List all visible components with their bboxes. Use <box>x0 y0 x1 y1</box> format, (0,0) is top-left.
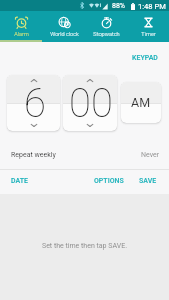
button[interactable]: KEYPAD <box>126 50 166 66</box>
button[interactable]: 00 <box>63 75 117 131</box>
staticText: AM <box>131 95 151 110</box>
staticText: 00 <box>69 80 113 127</box>
staticText: OPTIONS <box>94 177 124 185</box>
staticText: 6 <box>24 80 46 127</box>
staticText: Timer <box>141 31 156 38</box>
staticText: Stopwatch <box>93 31 120 38</box>
button[interactable]: Timer <box>127 12 169 41</box>
staticText: 88% <box>112 2 125 10</box>
button[interactable]: SAVE <box>134 172 169 190</box>
button[interactable]: AM <box>121 82 161 123</box>
staticText: Repeat weekly <box>11 151 56 159</box>
staticText: SAVE <box>139 177 157 185</box>
staticText: World clock <box>50 31 79 38</box>
staticText: Alarm <box>14 31 29 38</box>
button[interactable]: Stopwatch <box>85 12 127 41</box>
staticText: 1:48 PM <box>138 2 166 11</box>
button[interactable]: Repeat weekly <box>0 143 169 167</box>
staticText: KEYPAD <box>132 54 158 62</box>
staticText: Never <box>141 151 160 159</box>
button[interactable]: World clock <box>43 12 85 41</box>
button[interactable]: Alarm <box>0 12 43 41</box>
button[interactable]: DATE <box>0 172 36 190</box>
staticText: Set the time then tap SAVE. <box>42 242 127 250</box>
button[interactable]: 6 <box>7 75 60 131</box>
button[interactable]: OPTIONS <box>89 172 129 190</box>
staticText: DATE <box>11 177 29 185</box>
